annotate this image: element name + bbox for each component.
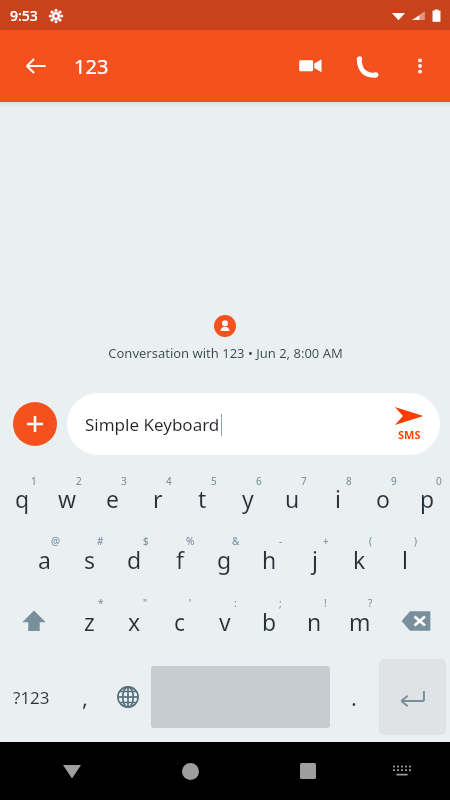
staticText: 9:53	[10, 6, 38, 25]
staticText: !	[324, 596, 327, 610]
staticText: h	[262, 544, 277, 575]
button[interactable]: ?123	[0, 652, 63, 742]
staticText: u	[285, 483, 300, 514]
button[interactable]: Backspace	[382, 590, 450, 652]
button[interactable]: Back	[12, 42, 60, 90]
staticText: s	[84, 544, 96, 575]
button[interactable]: e	[90, 468, 135, 528]
staticText: Conversation with 123 • Jun 2, 8:00 AM	[108, 344, 343, 362]
staticText: $	[143, 534, 149, 548]
button[interactable]: c	[157, 590, 202, 652]
button[interactable]: r	[135, 468, 180, 528]
staticText: y	[242, 483, 254, 514]
staticText: p	[420, 483, 435, 514]
button[interactable]: Recent apps	[284, 747, 332, 795]
staticText: 5	[211, 474, 217, 488]
staticText: a	[38, 544, 51, 575]
staticText: 7	[301, 474, 307, 488]
staticText: g	[217, 544, 232, 575]
button[interactable]: b	[247, 590, 292, 652]
button[interactable]: l	[382, 528, 427, 590]
staticText: n	[307, 606, 322, 637]
button[interactable]: Switch language	[106, 652, 149, 742]
button[interactable]: .	[332, 652, 375, 742]
staticText: w	[58, 483, 77, 514]
staticText: 9	[391, 474, 397, 488]
button[interactable]: Call	[344, 42, 392, 90]
staticText: "	[143, 596, 148, 610]
button[interactable]: Add attachment	[13, 402, 57, 446]
staticText: )	[414, 534, 417, 548]
staticText: 2	[76, 474, 82, 488]
button[interactable]: i	[315, 468, 360, 528]
staticText: 123	[74, 53, 109, 80]
staticText: c	[174, 606, 186, 637]
staticText: l	[402, 544, 408, 575]
staticText: '	[189, 596, 192, 610]
button[interactable]: k	[337, 528, 382, 590]
button[interactable]: o	[360, 468, 405, 528]
button[interactable]: Shift	[0, 590, 67, 652]
staticText: :	[234, 596, 237, 610]
staticText: b	[262, 606, 277, 637]
staticText: d	[127, 544, 142, 575]
button[interactable]: a	[22, 528, 67, 590]
button[interactable]: Back	[48, 747, 96, 795]
button[interactable]: f	[157, 528, 202, 590]
staticText: *	[98, 596, 104, 610]
button[interactable]: Change keyboard	[380, 749, 424, 793]
staticText: i	[335, 483, 341, 514]
staticText: (	[369, 534, 372, 548]
staticText: 4	[166, 474, 172, 488]
staticText: f	[176, 544, 184, 575]
button[interactable]: y	[225, 468, 270, 528]
staticText: o	[376, 483, 390, 514]
button[interactable]: Simple Keyboard	[67, 393, 440, 455]
staticText: ?123	[13, 686, 50, 709]
staticText: @	[51, 534, 60, 548]
button[interactable]: h	[247, 528, 292, 590]
staticText: 1	[31, 474, 37, 488]
button[interactable]: ,	[63, 652, 106, 742]
button[interactable]: d	[112, 528, 157, 590]
button[interactable]: Send SMS	[378, 393, 440, 455]
staticText: Simple Keyboard	[85, 413, 220, 436]
staticText: r	[153, 483, 163, 514]
staticText: ,	[82, 682, 88, 712]
staticText: %	[186, 534, 195, 548]
staticText: 8	[346, 474, 352, 488]
button[interactable]: v	[202, 590, 247, 652]
staticText: SMS	[398, 427, 421, 442]
staticText: k	[353, 544, 366, 575]
button[interactable]: m	[337, 590, 382, 652]
staticText: .	[351, 682, 357, 712]
button[interactable]: t	[180, 468, 225, 528]
button[interactable]: j	[292, 528, 337, 590]
staticText: z	[84, 606, 95, 637]
button[interactable]: Video call	[286, 42, 334, 90]
button[interactable]: Home	[166, 747, 214, 795]
staticText: ;	[279, 596, 282, 610]
staticText: v	[219, 606, 231, 637]
staticText: #	[97, 534, 104, 548]
staticText: -	[279, 534, 283, 548]
staticText: +	[323, 534, 329, 548]
staticText: ?	[368, 596, 373, 610]
staticText: x	[128, 606, 141, 637]
button[interactable]: q	[0, 468, 45, 528]
button[interactable]: n	[292, 590, 337, 652]
staticText: &	[232, 534, 240, 548]
button[interactable]: More options	[396, 42, 444, 90]
button[interactable]: p	[405, 468, 450, 528]
button[interactable]: w	[45, 468, 90, 528]
button[interactable]: x	[112, 590, 157, 652]
staticText: q	[15, 483, 30, 514]
button[interactable]: u	[270, 468, 315, 528]
button[interactable]: z	[67, 590, 112, 652]
button[interactable]: s	[67, 528, 112, 590]
staticText: 3	[121, 474, 127, 488]
button[interactable]: g	[202, 528, 247, 590]
staticText: j	[312, 544, 318, 575]
button[interactable]: Enter	[379, 659, 446, 735]
